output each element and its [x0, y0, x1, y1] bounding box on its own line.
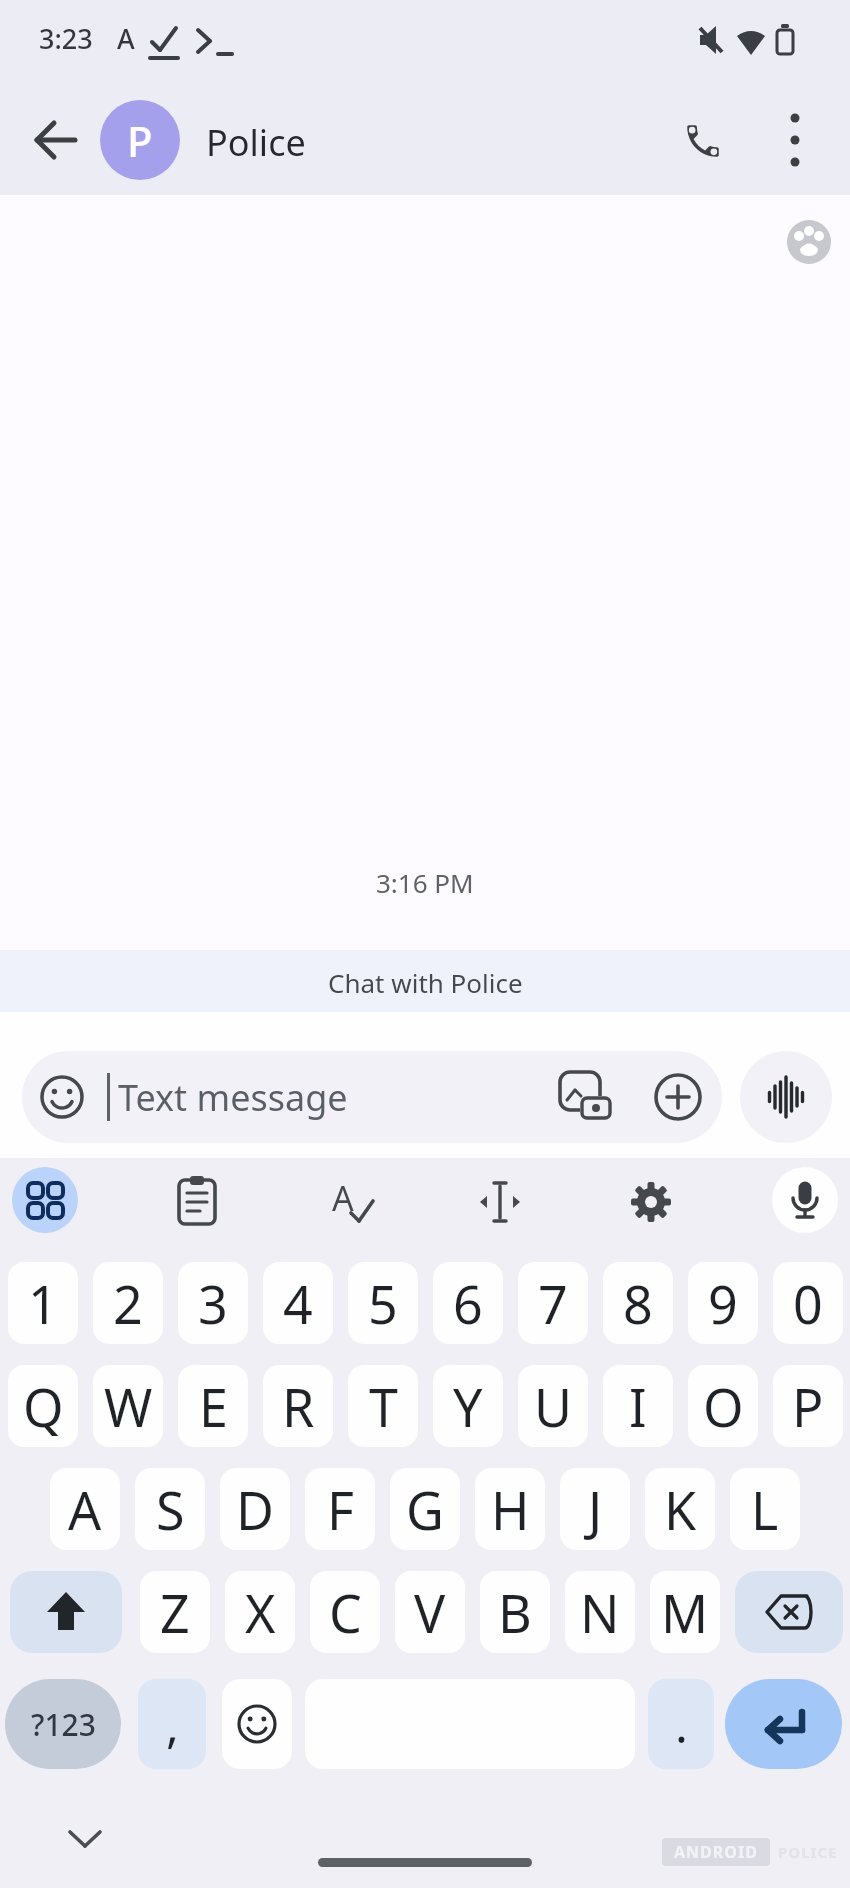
button[interactable]: 0	[773, 1262, 843, 1344]
staticText: R	[282, 1371, 315, 1442]
button[interactable]: A	[325, 1175, 375, 1225]
button[interactable]: A	[50, 1468, 120, 1550]
button[interactable]	[725, 1679, 842, 1769]
button[interactable]: 6	[433, 1262, 503, 1344]
button[interactable]: Y	[433, 1365, 503, 1447]
staticText: Y	[453, 1371, 483, 1442]
button[interactable]: 1	[8, 1262, 78, 1344]
staticText: 4	[283, 1268, 313, 1339]
staticText: A	[117, 20, 135, 57]
staticText: 3:23	[39, 20, 93, 57]
button[interactable]: 5	[348, 1262, 418, 1344]
button[interactable]	[770, 110, 820, 170]
staticText: I	[629, 1371, 647, 1442]
button[interactable]: I	[603, 1365, 673, 1447]
button[interactable]: 8	[603, 1262, 673, 1344]
button[interactable]: G	[390, 1468, 460, 1550]
button[interactable]	[772, 1167, 838, 1233]
button[interactable]: K	[645, 1468, 715, 1550]
button[interactable]	[735, 1571, 843, 1653]
button[interactable]: M	[650, 1571, 720, 1653]
button[interactable]: 9	[688, 1262, 758, 1344]
staticText: 1	[28, 1268, 58, 1339]
staticText: .	[675, 1692, 688, 1757]
staticText: G	[406, 1474, 444, 1545]
button[interactable]	[740, 1051, 832, 1143]
button[interactable]: V	[395, 1571, 465, 1653]
button[interactable]: Z	[140, 1571, 210, 1653]
staticText: Q	[23, 1371, 64, 1442]
staticText: T	[369, 1371, 398, 1442]
staticText: 8	[623, 1268, 653, 1339]
button[interactable]: E	[178, 1365, 248, 1447]
button[interactable]: O	[688, 1365, 758, 1447]
staticText: POLICE	[778, 1842, 838, 1862]
staticText: K	[664, 1474, 697, 1545]
button[interactable]: ?123	[5, 1679, 121, 1769]
staticText: L	[751, 1474, 779, 1545]
button[interactable]: S	[135, 1468, 205, 1550]
button[interactable]: H	[475, 1468, 545, 1550]
button[interactable]: U	[518, 1365, 588, 1447]
button[interactable]: B	[480, 1571, 550, 1653]
staticText: V	[414, 1577, 446, 1648]
staticText: 6	[453, 1268, 483, 1339]
staticText: P	[127, 112, 153, 169]
button[interactable]: X	[225, 1571, 295, 1653]
button[interactable]: Q	[8, 1365, 78, 1447]
button[interactable]	[222, 1679, 292, 1769]
staticText: H	[491, 1474, 530, 1545]
button[interactable]	[55, 1820, 115, 1860]
staticText: Z	[160, 1577, 190, 1648]
button[interactable]	[627, 1178, 675, 1226]
button[interactable]: 2	[93, 1262, 163, 1344]
staticText: J	[588, 1474, 603, 1545]
staticText: M	[661, 1577, 709, 1648]
staticText: W	[104, 1371, 153, 1442]
staticText: D	[236, 1474, 274, 1545]
staticText: 9	[708, 1268, 738, 1339]
button[interactable]: R	[263, 1365, 333, 1447]
button[interactable]: 7	[518, 1262, 588, 1344]
button[interactable]: 4	[263, 1262, 333, 1344]
staticText: 5	[368, 1268, 398, 1339]
staticText: Chat with Police	[328, 965, 523, 1000]
button[interactable]	[12, 1167, 78, 1233]
staticText: O	[703, 1371, 744, 1442]
button[interactable]: ,	[138, 1679, 206, 1769]
button[interactable]	[25, 110, 85, 170]
button[interactable]: .	[648, 1679, 714, 1769]
button[interactable]: 3	[178, 1262, 248, 1344]
button[interactable]: T	[348, 1365, 418, 1447]
button[interactable]: L	[730, 1468, 800, 1550]
staticText: A	[68, 1474, 102, 1545]
button[interactable]: C	[310, 1571, 380, 1653]
button[interactable]: W	[93, 1365, 163, 1447]
staticText: Text message	[118, 1073, 348, 1122]
staticText: 2	[113, 1268, 143, 1339]
staticText: 3	[198, 1268, 228, 1339]
staticText: 0	[793, 1268, 823, 1339]
button[interactable]: P	[773, 1365, 843, 1447]
staticText: E	[199, 1371, 228, 1442]
staticText: ANDROID	[674, 1841, 758, 1863]
button[interactable]: J	[560, 1468, 630, 1550]
button[interactable]	[10, 1571, 122, 1653]
staticText: C	[329, 1577, 362, 1648]
button[interactable]	[682, 120, 724, 162]
staticText: 3:16 PM	[376, 865, 474, 900]
staticText: S	[156, 1474, 185, 1545]
button[interactable]: F	[305, 1468, 375, 1550]
staticText: F	[327, 1474, 354, 1545]
staticText: X	[245, 1577, 276, 1648]
staticText: ?123	[31, 1704, 96, 1745]
button[interactable]	[172, 1175, 222, 1225]
staticText: A	[332, 1175, 354, 1219]
button[interactable]: P	[100, 100, 180, 180]
button[interactable]	[475, 1178, 525, 1228]
button[interactable]: D	[220, 1468, 290, 1550]
staticText: ,	[166, 1692, 179, 1757]
button[interactable]: N	[565, 1571, 635, 1653]
button[interactable]	[22, 1051, 722, 1143]
